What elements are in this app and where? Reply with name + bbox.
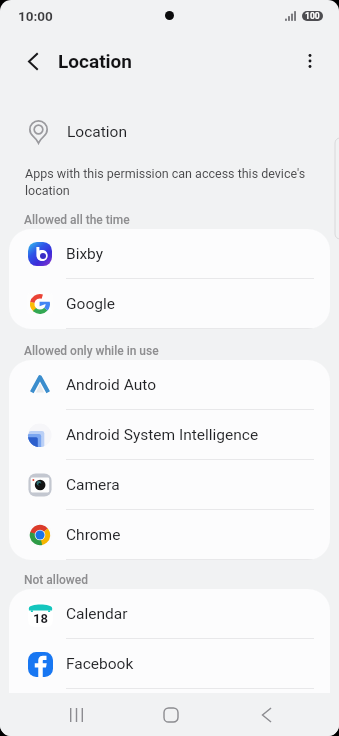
staticText: Android Auto <box>66 376 157 394</box>
button[interactable]: Back <box>246 695 286 735</box>
staticText: Chrome <box>66 526 121 544</box>
staticText: Google <box>66 295 115 313</box>
staticText: Bixby <box>66 245 104 263</box>
staticText: Facebook <box>66 655 134 673</box>
staticText: Apps with this permission can access thi… <box>25 166 310 198</box>
staticText: 10:00 <box>18 8 53 24</box>
button[interactable]: Recent apps <box>56 695 96 735</box>
staticText: Allowed all the time <box>24 213 130 227</box>
button[interactable]: Android System Intelligence <box>9 410 330 460</box>
button[interactable]: More options <box>290 41 330 81</box>
staticText: Location <box>67 123 127 141</box>
button[interactable]: Camera <box>9 460 330 510</box>
button[interactable]: 18 <box>9 589 330 639</box>
button[interactable]: Home <box>151 695 191 735</box>
button[interactable]: Bixby <box>9 229 330 279</box>
button[interactable]: Android Auto <box>9 360 330 410</box>
staticText: Camera <box>66 476 120 494</box>
staticText: Not allowed <box>24 573 88 587</box>
button[interactable]: Google <box>9 279 330 329</box>
staticText: Android System Intelligence <box>66 426 259 444</box>
staticText: Allowed only while in use <box>24 344 159 358</box>
button[interactable]: Navigate up <box>13 41 53 81</box>
button[interactable]: Facebook <box>9 639 330 689</box>
staticText: Calendar <box>66 605 128 623</box>
staticText: 100 <box>305 11 320 21</box>
staticText: Location <box>58 50 132 72</box>
staticText: 18 <box>33 611 48 626</box>
button[interactable]: Chrome <box>9 510 330 560</box>
